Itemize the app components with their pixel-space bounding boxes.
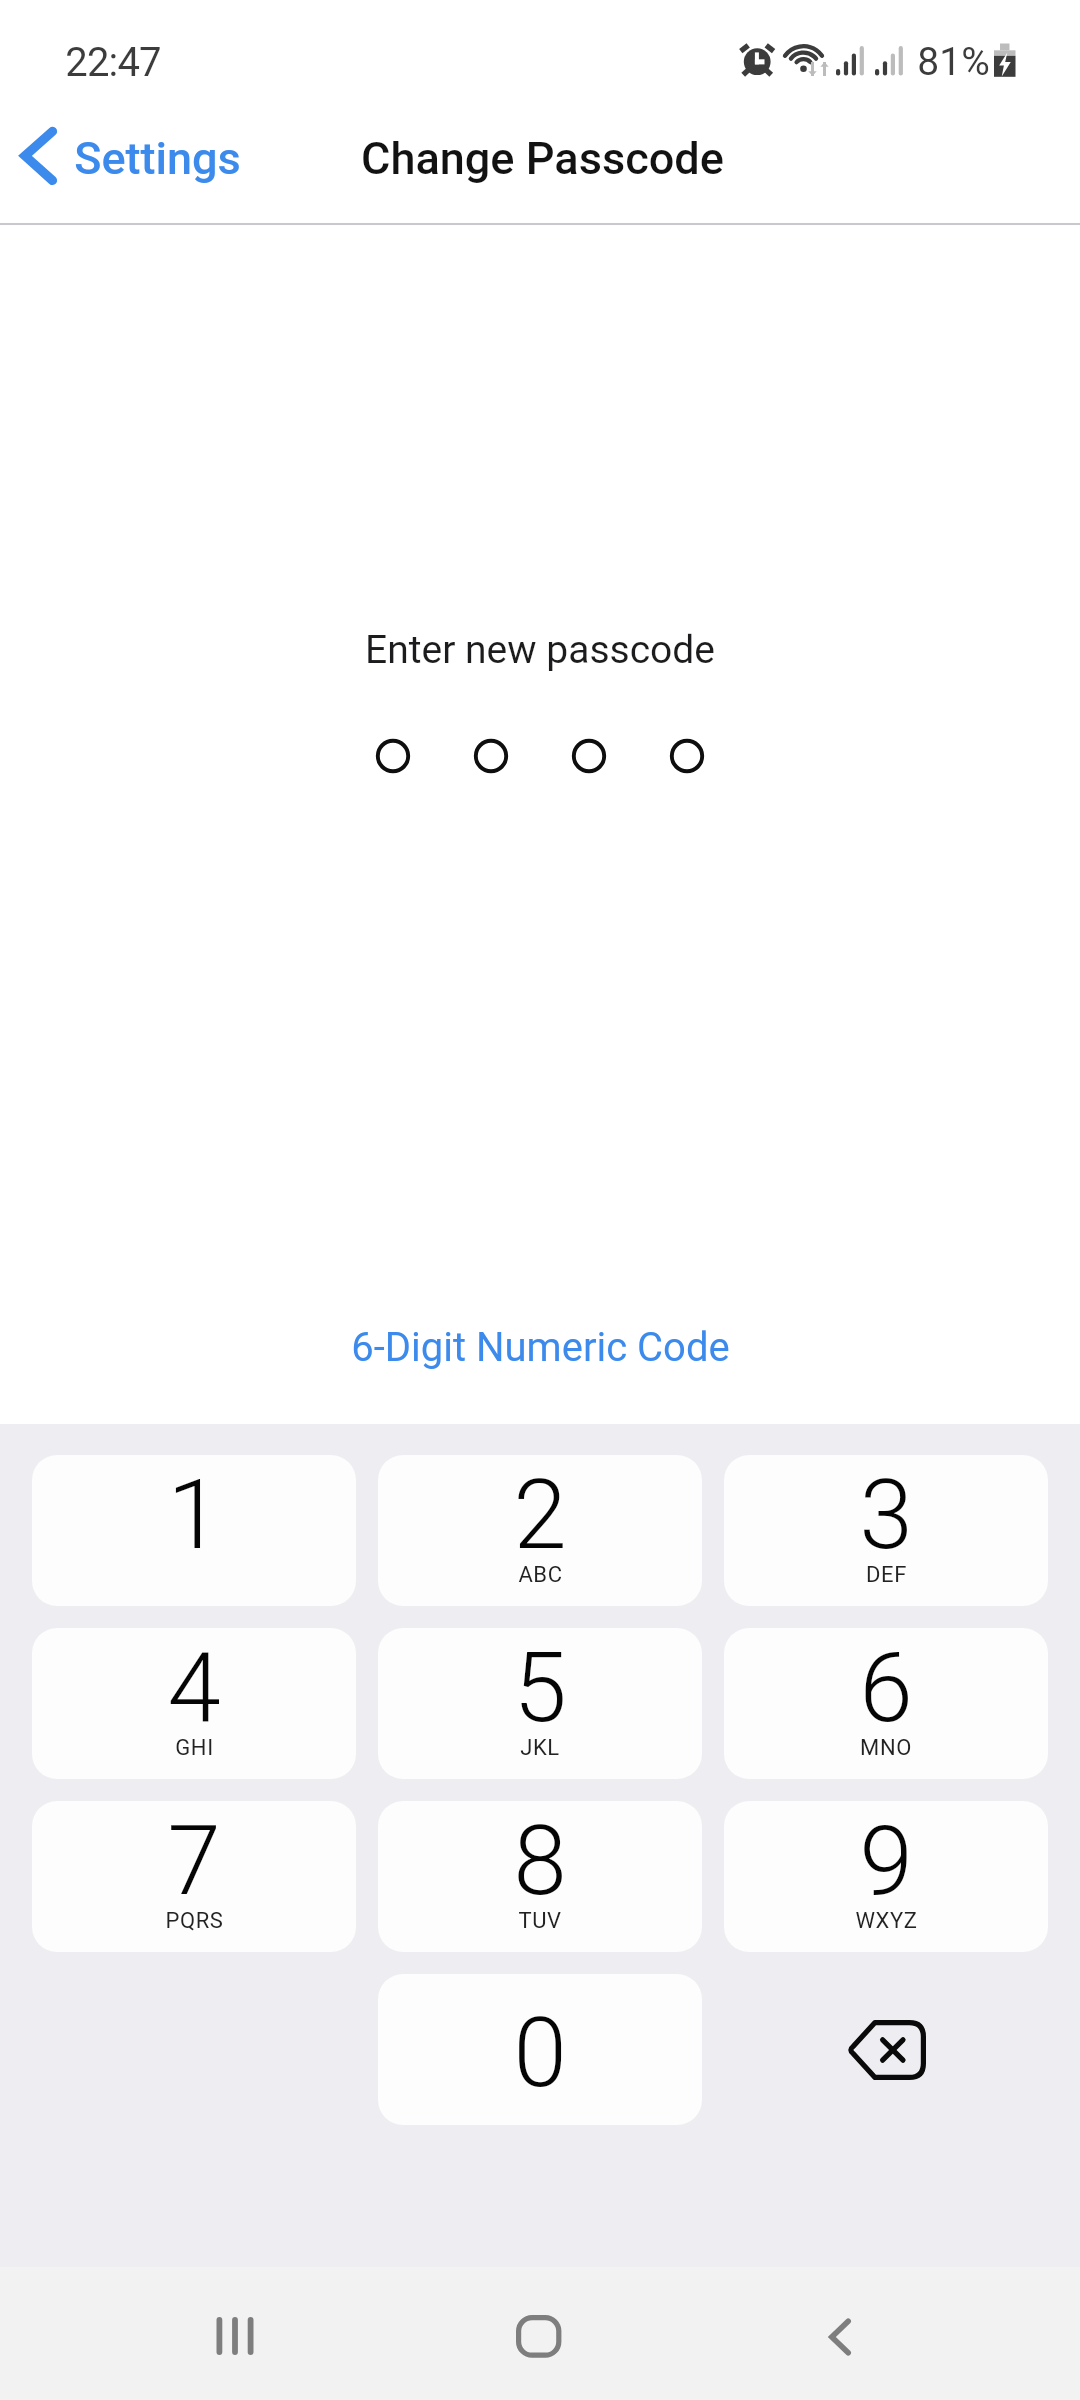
staticText: 3 bbox=[859, 1459, 913, 1572]
button[interactable]: Home bbox=[478, 2276, 598, 2396]
staticText: Enter new passcode bbox=[365, 627, 715, 673]
staticText: Change Passcode bbox=[361, 132, 724, 185]
button[interactable]: 9 bbox=[724, 1801, 1048, 1952]
staticText: 1 bbox=[167, 1459, 221, 1572]
staticText: 9 bbox=[859, 1805, 913, 1918]
button[interactable]: Settings bbox=[6, 116, 258, 216]
staticText: 6-Digit Numeric Code bbox=[351, 1324, 730, 1371]
staticText: Settings bbox=[74, 132, 241, 185]
button[interactable]: Recent apps bbox=[175, 2276, 295, 2396]
button[interactable]: 5 bbox=[378, 1628, 702, 1779]
button[interactable]: 8 bbox=[378, 1801, 702, 1952]
staticText: 6 bbox=[859, 1632, 913, 1745]
staticText: 7 bbox=[167, 1805, 221, 1918]
button[interactable]: 7 bbox=[32, 1801, 356, 1952]
button[interactable]: 4 bbox=[32, 1628, 356, 1779]
button[interactable]: 0 bbox=[378, 1974, 702, 2125]
button[interactable]: 3 bbox=[724, 1455, 1048, 1606]
staticText: 81% bbox=[917, 39, 990, 85]
staticText: 0 bbox=[513, 1997, 567, 2110]
staticText: WXYZ bbox=[855, 1908, 918, 1934]
button[interactable]: 1 bbox=[32, 1455, 356, 1606]
staticText: ABC bbox=[518, 1562, 563, 1588]
staticText: 8 bbox=[513, 1805, 567, 1918]
button[interactable]: Delete bbox=[724, 1974, 1048, 2125]
staticText: GHI bbox=[175, 1735, 214, 1761]
staticText: 5 bbox=[513, 1632, 567, 1745]
button[interactable]: Back bbox=[780, 2277, 900, 2397]
staticText: DEF bbox=[866, 1562, 907, 1588]
staticText: MNO bbox=[860, 1735, 912, 1761]
staticText: 22:47 bbox=[65, 39, 161, 86]
button[interactable]: 6 bbox=[724, 1628, 1048, 1779]
staticText: JKL bbox=[520, 1735, 560, 1761]
button[interactable]: 2 bbox=[378, 1455, 702, 1606]
staticText: 2 bbox=[513, 1459, 567, 1572]
staticText: TUV bbox=[518, 1908, 562, 1934]
button[interactable]: 6-Digit Numeric Code bbox=[351, 1324, 730, 1371]
staticText: PQRS bbox=[165, 1908, 224, 1934]
staticText: 4 bbox=[167, 1632, 221, 1745]
